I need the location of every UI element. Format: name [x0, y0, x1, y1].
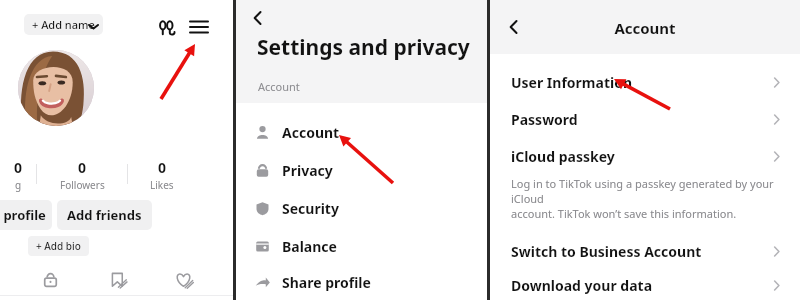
button[interactable]: Expand name	[88, 21, 99, 32]
staticText: Add friends	[67, 206, 142, 224]
staticText: iCloud passkey	[511, 147, 771, 166]
staticText: Account	[490, 18, 800, 38]
staticText: 0	[78, 158, 87, 177]
button[interactable]: Security	[236, 189, 487, 227]
button[interactable]: Add friends	[57, 200, 152, 230]
staticText: Download your data	[511, 276, 771, 295]
staticText: Account	[258, 79, 300, 94]
button[interactable]: Private posts	[33, 262, 67, 296]
button[interactable]: Balance	[236, 227, 487, 265]
staticText: Share profile	[282, 273, 371, 292]
staticText: 0	[158, 158, 167, 177]
staticText: Security	[282, 199, 339, 218]
staticText: Log in to TikTok using a passkey generat…	[511, 176, 800, 221]
staticText: Likes	[150, 178, 174, 192]
button[interactable]: Saved posts	[100, 262, 134, 296]
staticText: Balance	[282, 237, 337, 256]
staticText: Password	[511, 110, 771, 129]
staticText: 0	[14, 158, 23, 177]
button[interactable]: Privacy	[236, 151, 487, 189]
button[interactable]: Account	[236, 113, 487, 151]
button[interactable]: Back	[502, 15, 526, 39]
button[interactable]: User Information	[490, 64, 800, 101]
staticText: User Information	[511, 73, 771, 92]
staticText: Privacy	[282, 161, 333, 180]
staticText: Edit profile	[0, 206, 46, 224]
button[interactable]: + Add bio	[28, 236, 89, 256]
button[interactable]: Download your data	[490, 270, 800, 300]
staticText: + Add bio	[36, 239, 81, 253]
button[interactable]: iCloud passkey	[490, 138, 800, 175]
button[interactable]: Liked posts	[166, 262, 200, 296]
button[interactable]: Back	[246, 6, 270, 30]
staticText: g	[15, 178, 22, 192]
staticText: Switch to Business Account	[511, 242, 771, 261]
button[interactable]: + Add name	[24, 14, 103, 35]
staticText: Account	[282, 123, 340, 142]
button[interactable]: Menu	[186, 14, 212, 40]
button[interactable]: Switch to Business Account	[490, 233, 800, 270]
button[interactable]: Profile photo	[18, 50, 94, 126]
button[interactable]: Edit profile	[0, 200, 52, 230]
button[interactable]: Friends	[155, 14, 181, 40]
staticText: Settings and privacy	[257, 33, 470, 62]
button[interactable]: Share profile	[236, 265, 487, 300]
button[interactable]: Password	[490, 101, 800, 138]
staticText: + Add name	[32, 17, 95, 32]
staticText: Followers	[60, 178, 105, 192]
